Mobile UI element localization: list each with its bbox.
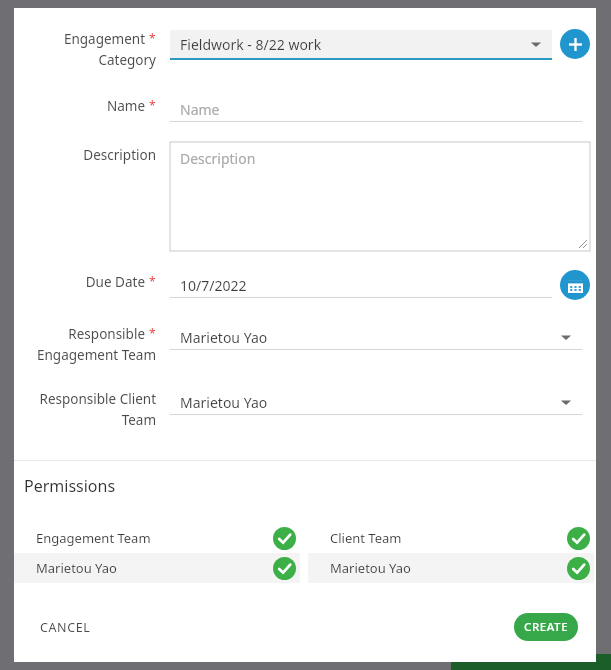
button[interactable]: Client Team xyxy=(308,523,594,553)
staticText: CREATE xyxy=(524,619,569,635)
button[interactable]: Marietou Yao xyxy=(170,390,582,414)
staticText: Responsible xyxy=(68,325,145,343)
staticText: Engagement xyxy=(63,30,145,48)
button[interactable]: Permission granted xyxy=(273,557,296,580)
staticText: Name xyxy=(180,100,220,119)
button[interactable]: Add engagement category xyxy=(560,29,590,59)
button[interactable]: 10/7/2022 xyxy=(170,273,552,297)
button[interactable]: Marietou Yao xyxy=(14,553,300,583)
staticText: Marietou Yao xyxy=(36,559,117,577)
button[interactable]: Permission granted xyxy=(273,527,296,550)
button[interactable]: Name xyxy=(170,97,582,121)
staticText: Category xyxy=(98,51,156,69)
staticText: Marietou Yao xyxy=(180,328,268,347)
button[interactable]: Permission granted xyxy=(567,527,590,550)
staticText: Marietou Yao xyxy=(330,559,411,577)
staticText: Name xyxy=(106,97,145,115)
staticText: CANCEL xyxy=(40,619,91,636)
staticText: * xyxy=(149,30,156,46)
staticText: Due Date xyxy=(85,273,145,291)
button[interactable]: Engagement Team xyxy=(14,523,300,553)
button[interactable]: Marietou Yao xyxy=(308,553,594,583)
button[interactable]: CANCEL xyxy=(36,613,95,642)
staticText: Description xyxy=(83,146,156,164)
staticText: Client Team xyxy=(330,529,402,547)
button[interactable]: Fieldwork - 8/22 work xyxy=(170,30,552,58)
staticText: 10/7/2022 xyxy=(180,276,247,295)
staticText: Permissions xyxy=(24,475,116,497)
button[interactable]: Marietou Yao xyxy=(170,325,582,349)
staticText: Responsible Client xyxy=(39,390,156,408)
button[interactable]: Description xyxy=(170,142,590,251)
staticText: Description xyxy=(180,149,256,168)
staticText: Fieldwork - 8/22 work xyxy=(180,35,322,54)
staticText: * xyxy=(149,325,156,341)
staticText: Marietou Yao xyxy=(180,393,268,412)
button[interactable]: Permission granted xyxy=(567,557,590,580)
button[interactable]: CREATE xyxy=(514,613,578,641)
staticText: Engagement Team xyxy=(36,529,151,547)
staticText: Engagement Team xyxy=(37,346,156,364)
staticText: Team xyxy=(121,411,156,429)
staticText: * xyxy=(149,97,156,113)
staticText: * xyxy=(149,273,156,289)
button[interactable]: Pick date xyxy=(560,270,590,300)
